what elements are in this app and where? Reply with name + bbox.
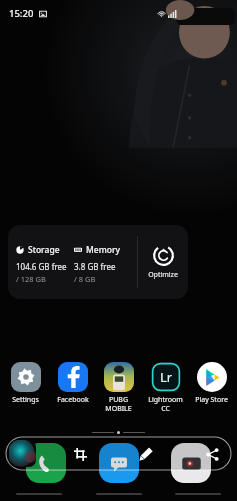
button[interactable]: Camera (171, 443, 211, 483)
button[interactable]: Facebook (50, 362, 95, 405)
button[interactable]: PUBG MOBILE (96, 362, 141, 413)
button[interactable]: Screenshot preview (9, 440, 36, 467)
button[interactable]: Share (199, 441, 225, 467)
staticText: 3.8 GB free (74, 261, 116, 272)
button[interactable]: Phone (26, 443, 66, 483)
staticText: PUBG MOBILE (105, 395, 132, 413)
staticText: / 8 GB (74, 274, 96, 284)
button[interactable]: Messages (99, 443, 139, 483)
staticText: Lightroom CC (148, 395, 183, 413)
button[interactable]: Play Store (189, 362, 234, 405)
staticText: 15:20 (9, 7, 34, 20)
button[interactable]: Crop (67, 441, 93, 467)
staticText: Facebook (57, 395, 89, 405)
staticText: Settings (12, 395, 39, 405)
staticText: 104.6 GB free (16, 261, 67, 272)
button[interactable]: Storage (8, 225, 188, 299)
button[interactable]: Draw (133, 441, 159, 467)
staticText: Play Store (195, 395, 228, 405)
staticText: Lr (160, 368, 173, 386)
staticText: Optimize (148, 270, 178, 280)
button[interactable]: Settings (3, 362, 48, 405)
staticText: / 128 GB (16, 274, 46, 284)
staticText: Memory (86, 244, 121, 256)
staticText: Storage (28, 244, 60, 256)
button[interactable]: Lr (143, 362, 188, 413)
button[interactable]: Optimize (138, 225, 188, 299)
